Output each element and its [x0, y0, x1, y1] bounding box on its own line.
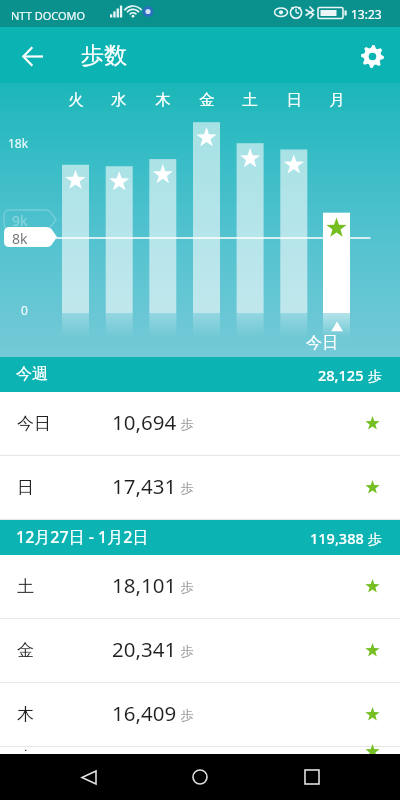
- staticText: 13:23: [351, 6, 382, 22]
- staticText: 土: [17, 576, 34, 597]
- staticText: 日: [282, 90, 306, 110]
- staticText: 9k: [12, 211, 28, 230]
- staticText: 金: [17, 640, 34, 661]
- staticText: 月: [325, 90, 349, 110]
- staticText: 18,101: [112, 571, 177, 599]
- button[interactable]: 土: [0, 555, 400, 619]
- staticText: 木: [17, 704, 34, 725]
- staticText: 歩: [177, 415, 195, 433]
- button[interactable]: 今日: [0, 392, 400, 456]
- staticText: 18k: [8, 135, 29, 151]
- button[interactable]: 金: [0, 619, 400, 683]
- staticText: 水: [17, 748, 34, 751]
- button[interactable]: Settings: [348, 32, 396, 80]
- staticText: 歩: [177, 706, 195, 724]
- staticText: 歩: [177, 479, 195, 497]
- staticText: 火: [64, 90, 88, 110]
- staticText: 11,527: [113, 746, 178, 749]
- button[interactable]: Back: [8, 32, 56, 80]
- staticText: 0: [21, 302, 28, 318]
- staticText: 日: [17, 477, 34, 498]
- staticText: 16,409: [112, 699, 177, 727]
- staticText: 歩: [177, 642, 195, 660]
- staticText: 20,341: [112, 635, 177, 663]
- button[interactable]: 日: [0, 456, 400, 520]
- staticText: 17,431: [112, 472, 177, 500]
- button[interactable]: Home: [176, 754, 224, 800]
- staticText: 水: [107, 90, 131, 110]
- button[interactable]: Recents: [288, 754, 336, 800]
- staticText: 今日: [17, 413, 51, 434]
- staticText: 金: [195, 90, 219, 110]
- staticText: 12月27日 - 1月2日: [16, 526, 149, 548]
- staticText: 土: [238, 90, 262, 110]
- staticText: 歩: [364, 529, 382, 548]
- staticText: 歩数: [81, 41, 127, 70]
- staticText: 8k: [12, 229, 28, 248]
- staticText: 28,125: [318, 365, 364, 385]
- button[interactable]: Back: [64, 754, 112, 800]
- button[interactable]: 木: [0, 683, 400, 747]
- staticText: NTT DOCOMO: [11, 8, 86, 23]
- staticText: 木: [151, 90, 175, 110]
- staticText: 今週: [16, 364, 48, 384]
- staticText: 今日: [306, 333, 338, 353]
- button[interactable]: 12月27日 - 1月2日: [0, 520, 400, 555]
- staticText: 歩: [177, 578, 195, 596]
- staticText: 10,694: [112, 408, 177, 436]
- staticText: 119,388: [310, 528, 364, 548]
- button[interactable]: 今週: [0, 357, 400, 392]
- staticText: 歩: [364, 366, 382, 385]
